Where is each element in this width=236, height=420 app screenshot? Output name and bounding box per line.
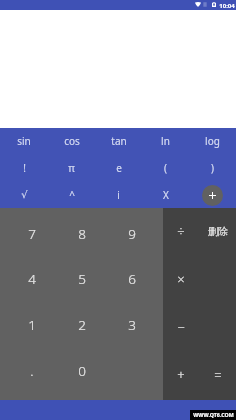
button[interactable]: ) bbox=[189, 154, 236, 181]
staticText: ! bbox=[23, 161, 26, 175]
staticText: 1 bbox=[28, 316, 36, 334]
button[interactable]: 7 bbox=[6, 211, 57, 256]
button[interactable]: i bbox=[95, 181, 142, 208]
staticText: = bbox=[214, 366, 222, 384]
staticText: 10:04 bbox=[219, 2, 235, 10]
staticText: log bbox=[205, 134, 220, 148]
button[interactable]: X bbox=[142, 181, 189, 208]
button[interactable] bbox=[189, 181, 236, 208]
button[interactable]: 5 bbox=[57, 256, 107, 302]
staticText: + bbox=[177, 366, 185, 384]
staticText: X bbox=[163, 188, 169, 202]
button[interactable]: 6 bbox=[107, 256, 157, 302]
staticText: ln bbox=[161, 134, 170, 148]
button[interactable]: + bbox=[163, 351, 199, 399]
staticText: 删除 bbox=[208, 225, 228, 238]
staticText: i bbox=[117, 188, 120, 202]
button[interactable]: 3 bbox=[107, 302, 157, 348]
staticText: 6 bbox=[128, 270, 136, 288]
other: Wi-Fi bbox=[195, 2, 201, 7]
button[interactable]: e bbox=[95, 154, 142, 181]
staticText: WWW.QT6.COM bbox=[193, 411, 234, 418]
staticText: cos bbox=[64, 134, 80, 148]
button[interactable]: cos bbox=[48, 128, 95, 154]
button[interactable]: 0 bbox=[57, 348, 107, 394]
staticText: √ bbox=[21, 189, 28, 201]
staticText: ÷ bbox=[177, 222, 185, 240]
button[interactable]: sin bbox=[0, 128, 48, 154]
button[interactable]: Add bbox=[202, 185, 223, 206]
staticText: − bbox=[177, 318, 185, 336]
staticText: 3 bbox=[128, 316, 136, 334]
button[interactable]: 1 bbox=[6, 302, 57, 348]
button[interactable]: 8 bbox=[57, 211, 107, 256]
button[interactable]: 删除 bbox=[199, 207, 236, 255]
button[interactable]: √ bbox=[0, 181, 48, 208]
staticText: ) bbox=[211, 161, 214, 175]
button[interactable]: tan bbox=[95, 128, 142, 154]
button[interactable]: π bbox=[48, 154, 95, 181]
button[interactable]: ln bbox=[142, 128, 189, 154]
staticText: 5 bbox=[78, 270, 86, 288]
staticText: e bbox=[116, 161, 122, 175]
button[interactable]: ! bbox=[0, 154, 48, 181]
staticText: tan bbox=[111, 134, 127, 148]
staticText: 8 bbox=[78, 225, 86, 243]
staticText: π bbox=[68, 161, 75, 175]
staticText: ^ bbox=[69, 188, 75, 202]
staticText: ( bbox=[164, 161, 167, 175]
button[interactable]: log bbox=[189, 128, 236, 154]
button[interactable]: ( bbox=[142, 154, 189, 181]
button[interactable]: 2 bbox=[57, 302, 107, 348]
staticText: 7 bbox=[28, 225, 36, 243]
staticText: . bbox=[30, 362, 34, 380]
staticText: 9 bbox=[128, 225, 136, 243]
button[interactable]: ^ bbox=[48, 181, 95, 208]
button[interactable]: × bbox=[163, 255, 199, 303]
button[interactable]: − bbox=[163, 303, 199, 351]
button[interactable]: = bbox=[199, 351, 236, 399]
staticText: 4 bbox=[28, 270, 36, 288]
staticText: 0 bbox=[78, 362, 86, 380]
button[interactable]: ÷ bbox=[163, 207, 199, 255]
button[interactable]: 4 bbox=[6, 256, 57, 302]
staticText: 2 bbox=[78, 316, 86, 334]
staticText: × bbox=[177, 270, 185, 288]
staticText: sin bbox=[17, 134, 31, 148]
button[interactable]: . bbox=[6, 348, 57, 394]
button[interactable]: 9 bbox=[107, 211, 157, 256]
